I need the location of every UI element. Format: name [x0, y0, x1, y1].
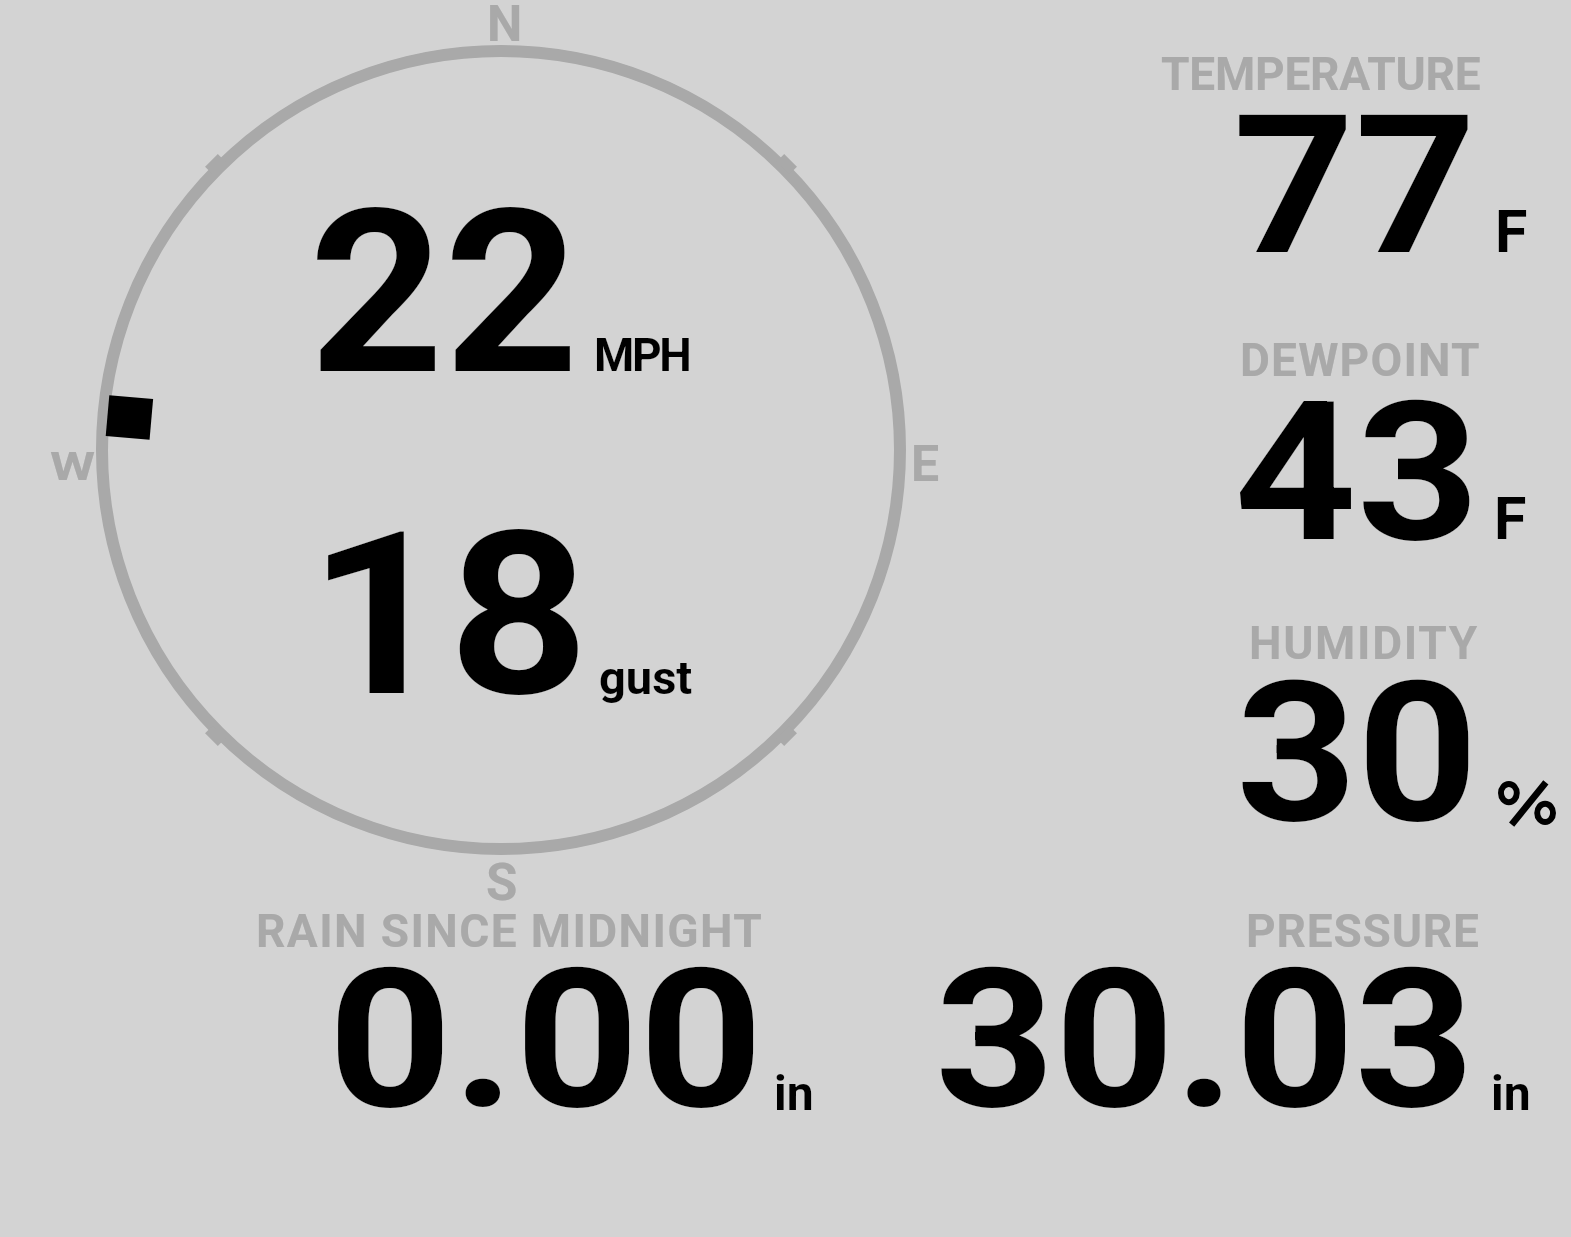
staticText: DEWPOINT	[1240, 333, 1481, 387]
staticText: 77	[1233, 73, 1477, 299]
staticText: in	[1491, 1065, 1531, 1121]
button[interactable]: Pressure 30.03 inches	[900, 895, 1520, 1120]
button[interactable]: Dewpoint 43 degrees Fahrenheit	[1000, 325, 1560, 555]
staticText: 30	[1236, 639, 1478, 868]
staticText: MPH	[594, 328, 690, 382]
staticText: TEMPERATURE	[1161, 47, 1481, 101]
staticText: 18	[308, 483, 590, 748]
staticText: 0.00	[328, 927, 764, 1153]
staticText: W	[50, 444, 96, 490]
staticText: in	[774, 1065, 814, 1121]
staticText: RAIN SINCE MIDNIGHT	[256, 904, 764, 958]
staticText: E	[911, 435, 940, 494]
button[interactable]: Temperature 77 degrees Fahrenheit	[1000, 40, 1560, 270]
staticText: gust	[599, 650, 693, 705]
staticText: 30.03	[935, 927, 1474, 1153]
staticText: 43	[1234, 360, 1480, 586]
button[interactable]: Wind speed and direction, 22 miles per h…	[90, 30, 920, 880]
staticText: F	[1495, 197, 1528, 266]
staticText: F	[1494, 484, 1527, 553]
staticText: HUMIDITY	[1249, 616, 1479, 670]
staticText: PRESSURE	[1246, 904, 1480, 958]
button[interactable]: Humidity 30 percent	[1000, 608, 1560, 838]
staticText: 22	[309, 161, 580, 426]
staticText: S	[486, 853, 518, 913]
button[interactable]: Rain since midnight 0.00 inches	[240, 895, 840, 1120]
staticText: N	[487, 0, 523, 54]
